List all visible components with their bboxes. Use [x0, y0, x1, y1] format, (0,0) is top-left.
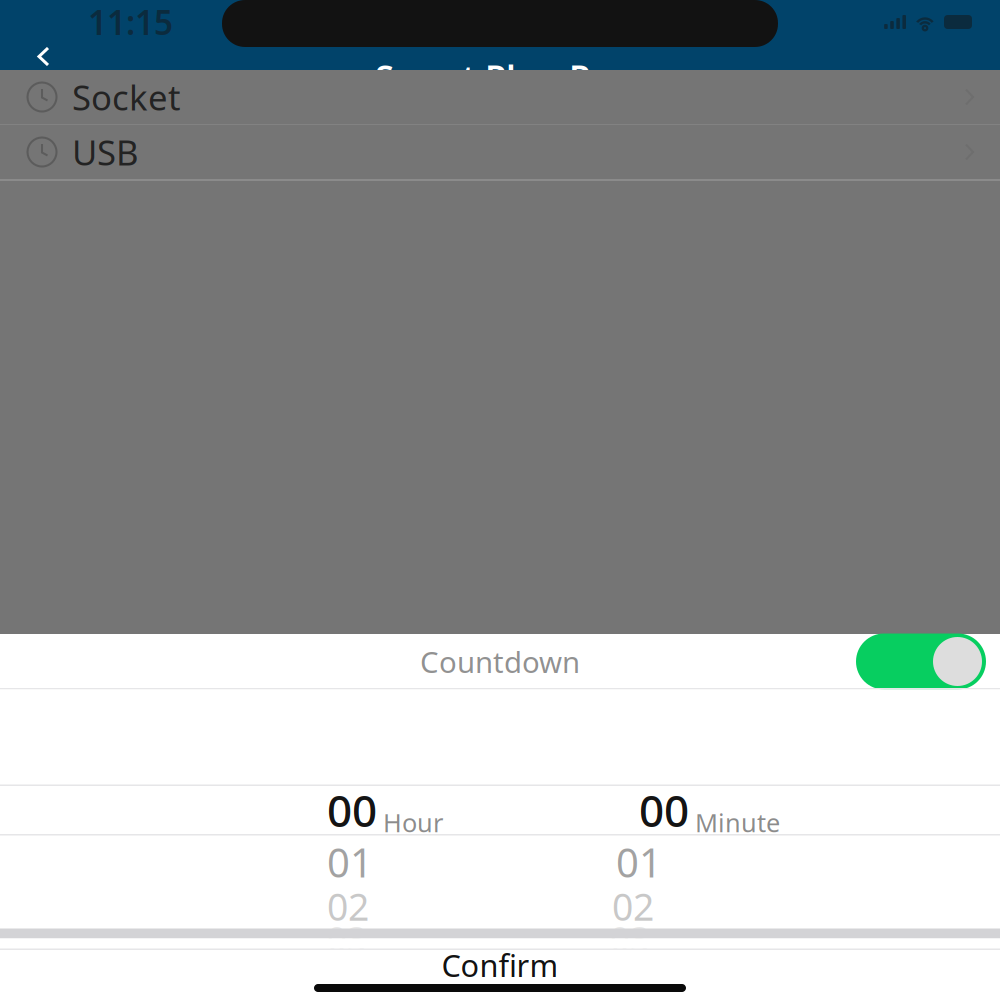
staticText: 03 [327, 915, 367, 961]
staticText: Minute [695, 806, 780, 839]
button[interactable]: USB [0, 125, 1000, 179]
staticText: 01 [616, 835, 662, 889]
button[interactable]: Confirm [0, 950, 1000, 999]
staticText: 01 [327, 835, 373, 889]
button[interactable]: Countdown switch, on [856, 633, 986, 689]
staticText: 02 [327, 881, 369, 931]
button[interactable]: Back [22, 44, 66, 70]
staticText: Countdown [420, 642, 580, 681]
staticText: 03 [610, 915, 650, 961]
staticText: Confirm [441, 945, 558, 985]
staticText: 00 [327, 781, 377, 839]
staticText: Hour [383, 806, 443, 839]
button[interactable]: Socket [0, 70, 1000, 124]
staticText: Socket [72, 74, 181, 120]
staticText: USB [72, 129, 139, 175]
staticText: 00 [639, 781, 689, 839]
staticText: Smart Plug Pro [375, 54, 625, 100]
staticText: 11:15 [88, 0, 173, 44]
staticText: 02 [612, 881, 654, 931]
